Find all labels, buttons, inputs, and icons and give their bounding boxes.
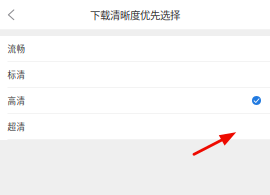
staticText: 标清 [7, 68, 25, 81]
button[interactable]: 高清 [0, 88, 270, 114]
staticText: 下载清晰度优先选择 [90, 7, 180, 22]
button[interactable]: 超清 [0, 114, 270, 140]
button[interactable]: Back [1, 5, 21, 25]
staticText: 高清 [7, 94, 25, 107]
staticText: 流畅 [7, 42, 25, 55]
button[interactable]: 流畅 [0, 36, 270, 62]
button[interactable]: 标清 [0, 62, 270, 88]
staticText: 超清 [7, 120, 25, 133]
